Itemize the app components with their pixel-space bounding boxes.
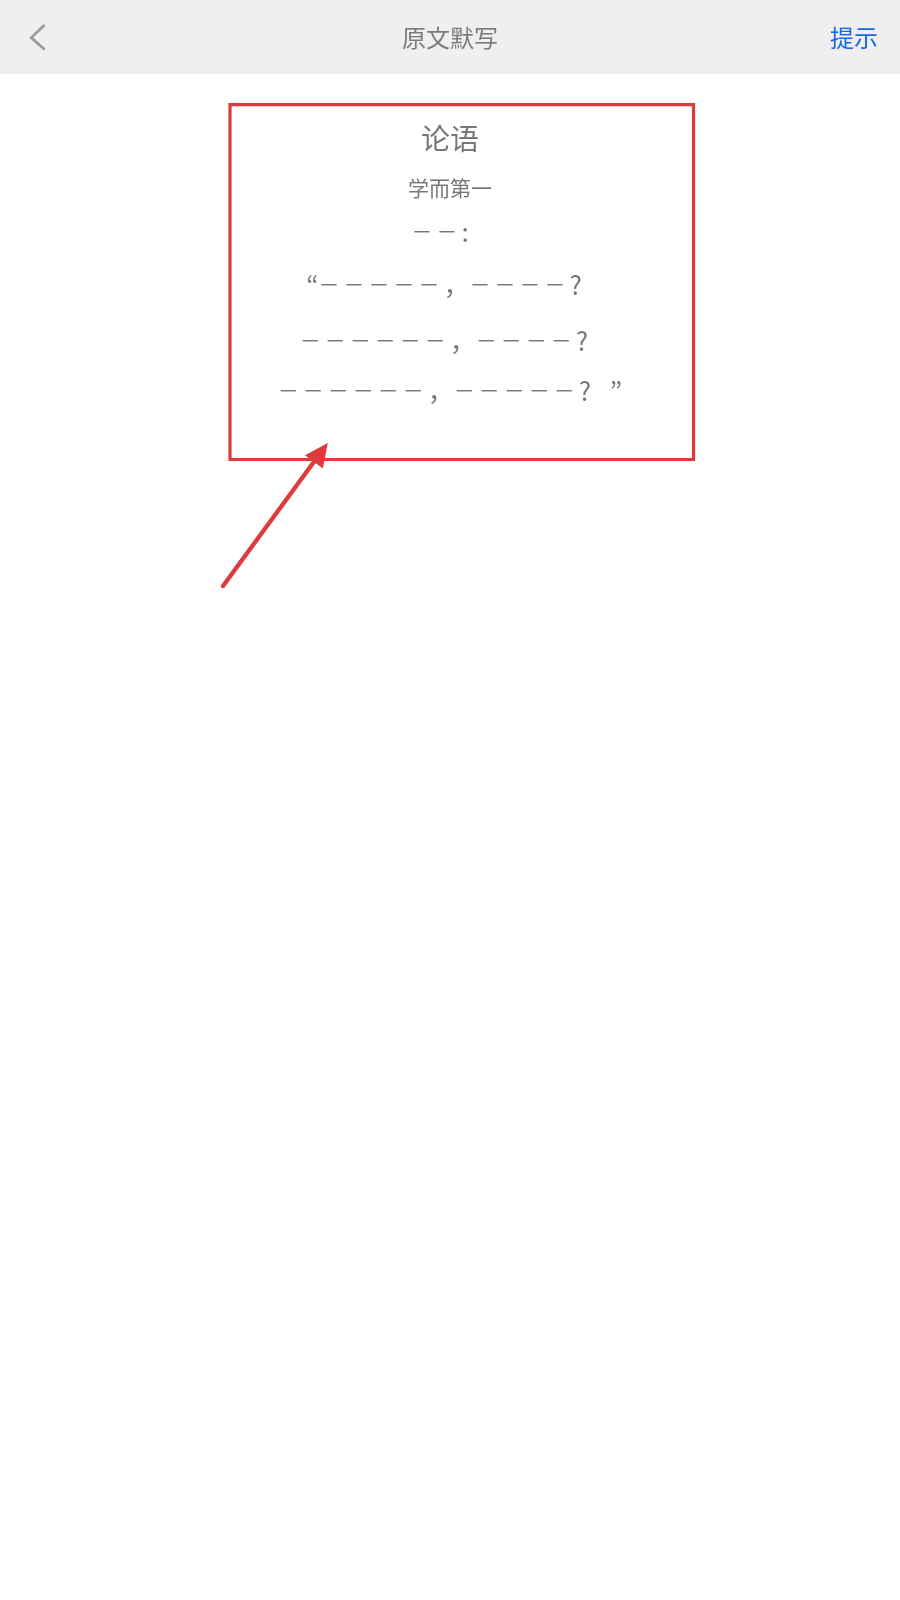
button[interactable]: 论语 学而第一 填空题 (230, 105, 694, 460)
staticText: 原文默写 (402, 19, 498, 54)
staticText: －－: (0, 212, 890, 250)
staticText: －－－－－－，－－－－－? ” (0, 371, 900, 409)
button[interactable]: Back (6, 6, 68, 68)
staticText: 学而第一 (0, 172, 900, 202)
staticText: 论语 (0, 116, 900, 158)
staticText: “－－－－－，－－－－? (0, 265, 894, 303)
staticText: －－－－－－，－－－－? (0, 321, 894, 359)
staticText: 提示 (830, 19, 878, 54)
button[interactable]: 提示 (808, 5, 900, 68)
